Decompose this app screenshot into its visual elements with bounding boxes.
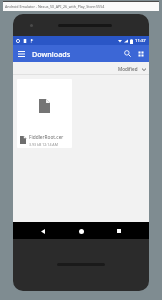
- button[interactable]: Switch to list view: [134, 47, 147, 60]
- button[interactable]: Back: [35, 223, 51, 239]
- staticText: Modified: [118, 66, 138, 72]
- button[interactable]: Recent apps: [111, 223, 127, 239]
- staticText: Android Emulator - Nexus_5X_API_26_with_…: [5, 4, 105, 9]
- staticText: FiddlerRoot.cer: [29, 134, 64, 141]
- button[interactable]: Open navigation drawer: [15, 47, 28, 60]
- staticText: 11:37: [135, 38, 146, 44]
- button[interactable]: Home: [73, 223, 89, 239]
- button[interactable]: Modified: [118, 66, 146, 72]
- staticText: 3.93 kB 12:14 AM: [29, 142, 58, 147]
- button[interactable]: FiddlerRoot.cer: [17, 79, 72, 148]
- button[interactable]: Search: [121, 47, 134, 60]
- staticText: Downloads: [32, 49, 71, 59]
